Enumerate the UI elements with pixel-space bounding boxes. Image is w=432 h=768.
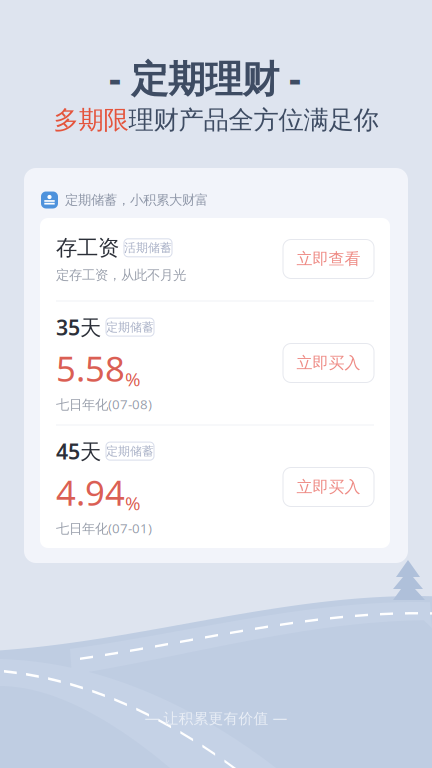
staticText: 立即买入	[296, 477, 360, 497]
staticText: 活期储蓄	[124, 240, 172, 255]
staticText: 35天	[56, 313, 101, 341]
staticText: 多期限	[53, 104, 128, 135]
staticText: — 让积累更有价值 —	[144, 708, 287, 728]
staticText: 定期储蓄，小积累大财富	[65, 192, 208, 208]
staticText: 5.58	[56, 345, 125, 391]
button[interactable]: 立即买入	[283, 467, 374, 506]
staticText: 理财产品全方位满足你	[128, 104, 378, 135]
staticText: 定期储蓄	[106, 444, 154, 458]
staticText: - 定期理财 -	[109, 53, 301, 103]
button[interactable]: 立即买入	[283, 343, 374, 382]
staticText: 定存工资，从此不月光	[56, 267, 186, 283]
staticText: 定期储蓄	[106, 320, 154, 334]
button[interactable]: 立即查看	[283, 239, 374, 278]
staticText: 立即查看	[296, 249, 360, 269]
staticText: %	[125, 490, 141, 515]
staticText: 立即买入	[296, 353, 360, 373]
staticText: 七日年化(07-01)	[56, 519, 152, 537]
staticText: 45天	[56, 437, 101, 465]
staticText: 存工资	[56, 235, 119, 261]
staticText: %	[125, 366, 141, 391]
staticText: 4.94	[56, 469, 125, 515]
staticText: 七日年化(07-08)	[56, 395, 152, 413]
